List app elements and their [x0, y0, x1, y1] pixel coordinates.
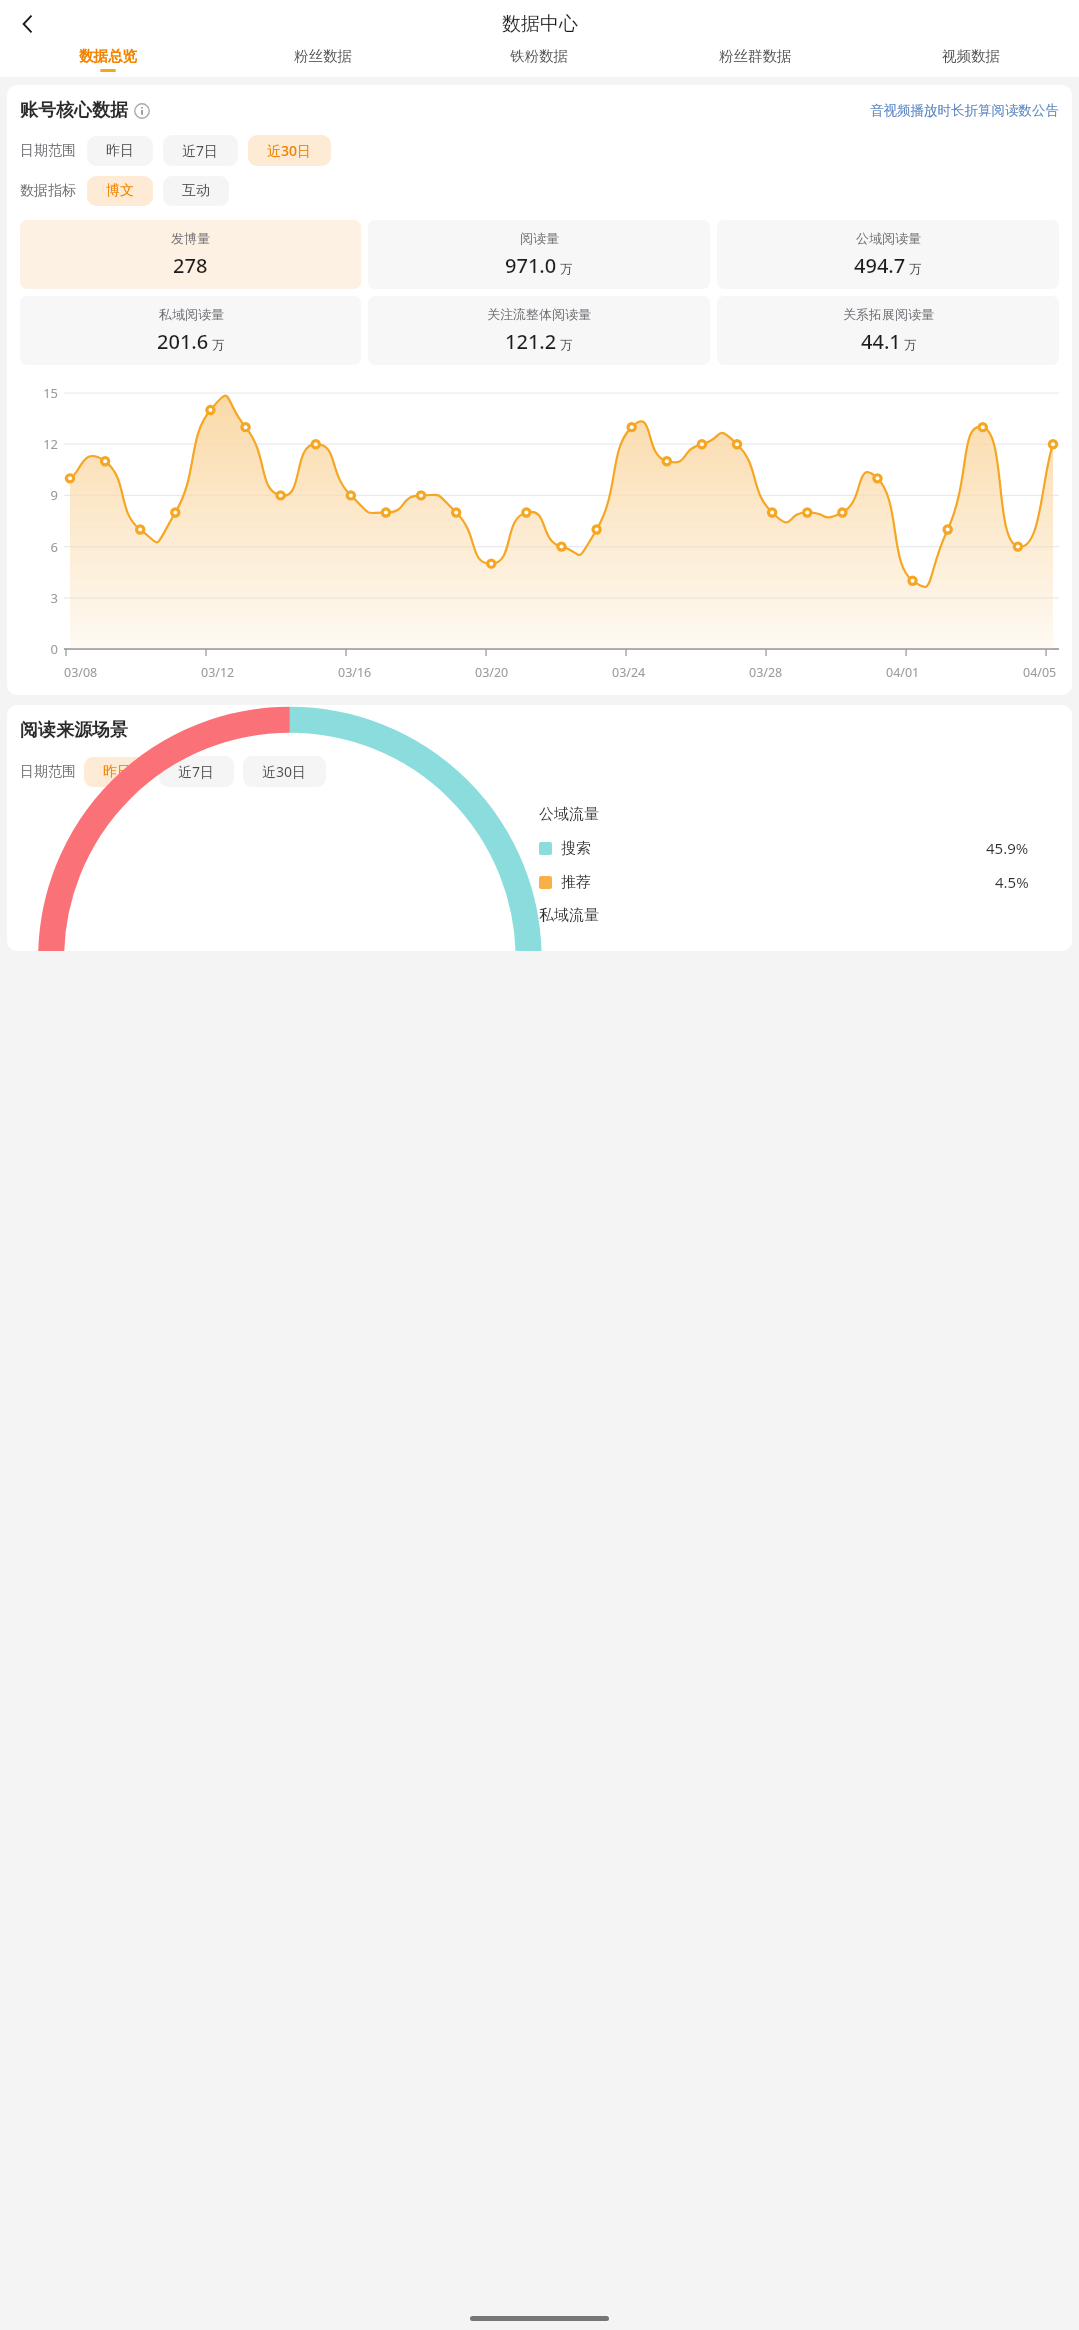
staticText: 04/01 [886, 664, 920, 681]
staticText: 博文 [106, 182, 134, 200]
staticText: 账号核心数据 [20, 99, 128, 122]
button[interactable]: 发博量 [20, 220, 361, 289]
button[interactable]: 昨日 [84, 757, 150, 787]
button[interactable]: 昨日 [87, 136, 153, 166]
staticText: 关系拓展阅读量 [843, 306, 934, 322]
button[interactable]: 粉丝群数据 [647, 47, 863, 69]
staticText: 日期范围 [20, 142, 76, 160]
button[interactable]: 公域阅读量 [717, 220, 1059, 289]
staticText: 搜索 [561, 839, 591, 858]
staticText: 03/16 [338, 664, 372, 681]
staticText: 昨日 [106, 142, 134, 160]
staticText: 03/28 [749, 664, 783, 681]
staticText: 12 [32, 435, 58, 453]
button[interactable]: 推荐 [539, 872, 1059, 892]
staticText: 推荐 [561, 873, 591, 892]
staticText: 日期范围 [20, 763, 76, 781]
button[interactable]: 铁粉数据 [431, 47, 647, 69]
staticText: 近7日 [182, 141, 219, 160]
staticText: 铁粉数据 [510, 47, 568, 65]
staticText: 粉丝数据 [294, 47, 352, 65]
staticText: 粉丝群数据 [719, 47, 792, 65]
button[interactable]: 私域阅读量 [20, 296, 361, 365]
staticText: 万 [560, 261, 573, 277]
staticText: 03/08 [64, 664, 98, 681]
button[interactable]: 数据总览 [0, 47, 215, 72]
staticText: 数据总览 [79, 47, 137, 65]
staticText: 近30日 [267, 141, 312, 160]
button[interactable]: 近30日 [243, 756, 326, 787]
staticText: 万 [212, 337, 225, 353]
staticText: 201.6 [157, 328, 209, 355]
staticText: 阅读来源场景 [20, 719, 128, 742]
staticText: 互动 [182, 182, 210, 200]
staticText: 数据中心 [502, 12, 578, 36]
button[interactable]: 粉丝数据 [215, 47, 431, 69]
button[interactable]: 关系拓展阅读量 [717, 296, 1059, 365]
button[interactable]: 近7日 [163, 135, 238, 166]
staticText: 阅读量 [520, 230, 559, 246]
staticText: 6 [32, 538, 58, 556]
staticText: 121.2 [505, 328, 557, 355]
staticText: 近30日 [262, 762, 307, 781]
staticText: 44.1 [861, 328, 901, 355]
staticText: 3 [32, 589, 58, 607]
staticText: 278 [173, 252, 208, 279]
staticText: 03/12 [201, 664, 235, 681]
staticText: 0 [32, 640, 58, 658]
staticText: 03/20 [475, 664, 509, 681]
staticText: 私域阅读量 [159, 306, 224, 322]
staticText: 万 [909, 261, 922, 277]
staticText: 私域流量 [539, 906, 599, 925]
button[interactable]: Back [6, 2, 50, 46]
staticText: 971.0 [505, 252, 557, 279]
staticText: 近7日 [178, 762, 215, 781]
staticText: 04/05 [1023, 664, 1057, 681]
button[interactable]: 阅读量 [368, 220, 710, 289]
button[interactable]: 关注流整体阅读量 [368, 296, 710, 365]
staticText: 公域流量 [539, 805, 599, 824]
staticText: 昨日 [103, 763, 131, 781]
staticText: 万 [560, 337, 573, 353]
button[interactable]: 搜索 [539, 838, 1059, 858]
staticText: 15 [32, 384, 58, 402]
button[interactable]: 视频数据 [863, 47, 1079, 69]
staticText: 9 [32, 486, 58, 504]
button[interactable]: 音视频播放时长折算阅读数公告 [870, 102, 1059, 119]
button[interactable]: 博文 [87, 176, 153, 206]
staticText: 494.7 [854, 252, 906, 279]
staticText: 数据指标 [20, 182, 76, 200]
button[interactable]: 互动 [163, 176, 229, 206]
staticText: 万 [904, 337, 917, 353]
button[interactable]: 近30日 [248, 135, 331, 166]
staticText: 45.9% [986, 838, 1029, 858]
staticText: 发博量 [171, 230, 210, 246]
staticText: 视频数据 [942, 47, 1000, 65]
staticText: 关注流整体阅读量 [487, 306, 591, 322]
button[interactable]: 近7日 [159, 756, 234, 787]
staticText: 公域阅读量 [856, 230, 921, 246]
button[interactable]: Info [134, 103, 150, 119]
staticText: 4.5% [995, 872, 1029, 892]
staticText: 03/24 [612, 664, 646, 681]
